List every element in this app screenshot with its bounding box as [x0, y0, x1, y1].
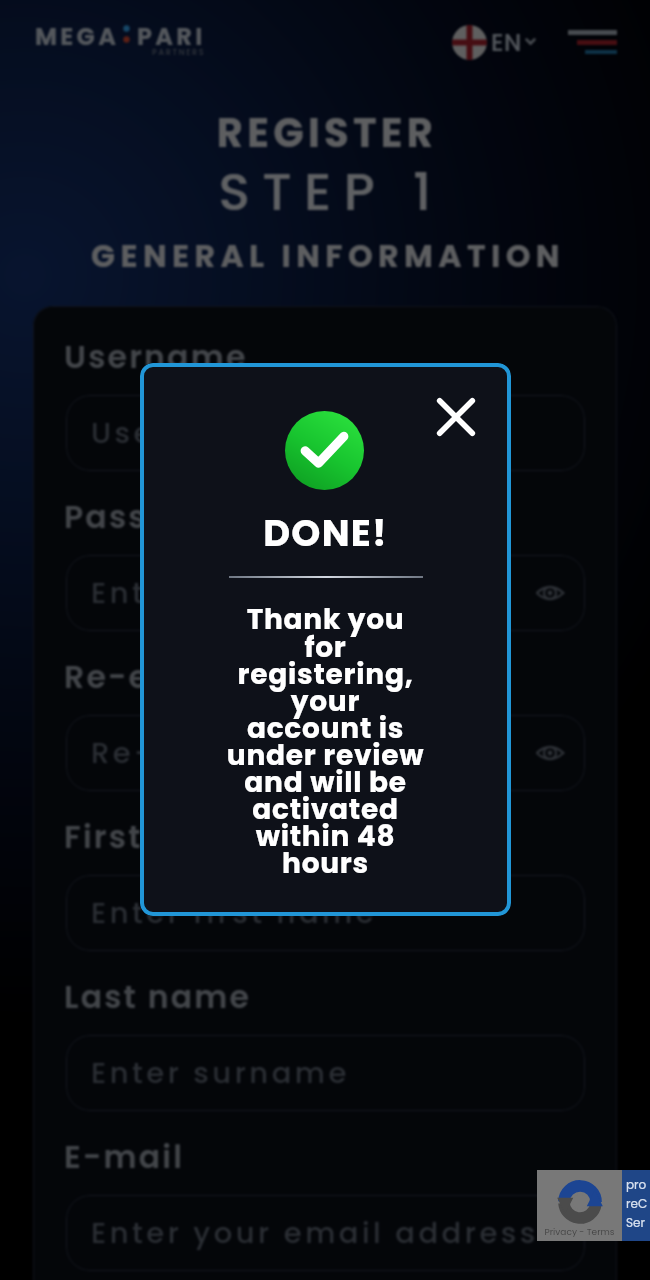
- staticText: Username: [64, 335, 248, 379]
- button[interactable]: Privacy - Terms: [537, 1170, 650, 1241]
- button[interactable]: Enter your email address: [66, 1195, 585, 1271]
- button[interactable]: Close: [437, 398, 475, 436]
- staticText: DONE!: [140, 507, 511, 559]
- staticText: EN: [491, 26, 522, 60]
- button[interactable]: Enter password: [66, 555, 585, 631]
- staticText: GENERAL INFORMATION: [3, 234, 650, 278]
- staticText: REGISTER: [2, 105, 650, 161]
- staticText: Privacy - Terms: [537, 1226, 622, 1239]
- staticText: PARI: [137, 20, 206, 54]
- staticText: Last name: [64, 975, 252, 1019]
- staticText: Enter your email address: [91, 1213, 539, 1254]
- staticText: pro reC Ser: [626, 1176, 648, 1231]
- staticText: Enter password: [91, 573, 365, 614]
- staticText: Thank you for registering, your account …: [140, 600, 511, 883]
- button[interactable]: Show password: [533, 733, 573, 773]
- staticText: Password: [64, 495, 238, 539]
- staticText: E-mail: [64, 1135, 185, 1179]
- staticText: Enter surname: [91, 1053, 350, 1094]
- staticText: MEGA: [35, 20, 120, 54]
- staticText: STEP 1: [6, 155, 650, 228]
- button[interactable]: Enter surname: [66, 1035, 585, 1111]
- button[interactable]: EN: [450, 22, 540, 62]
- button[interactable]: Menu: [565, 24, 622, 60]
- button[interactable]: Show password: [533, 573, 573, 613]
- staticText: Enter first name: [91, 893, 378, 934]
- staticText: Re-enter password: [64, 655, 410, 699]
- staticText: First name: [64, 815, 256, 859]
- staticText: Username: [91, 413, 271, 454]
- staticText: Re-enter password: [91, 733, 432, 774]
- button[interactable]: Username: [66, 395, 585, 471]
- button[interactable]: Re-enter password: [66, 715, 585, 791]
- staticText: PARTNERS: [152, 47, 206, 58]
- button[interactable]: Enter first name: [66, 875, 585, 951]
